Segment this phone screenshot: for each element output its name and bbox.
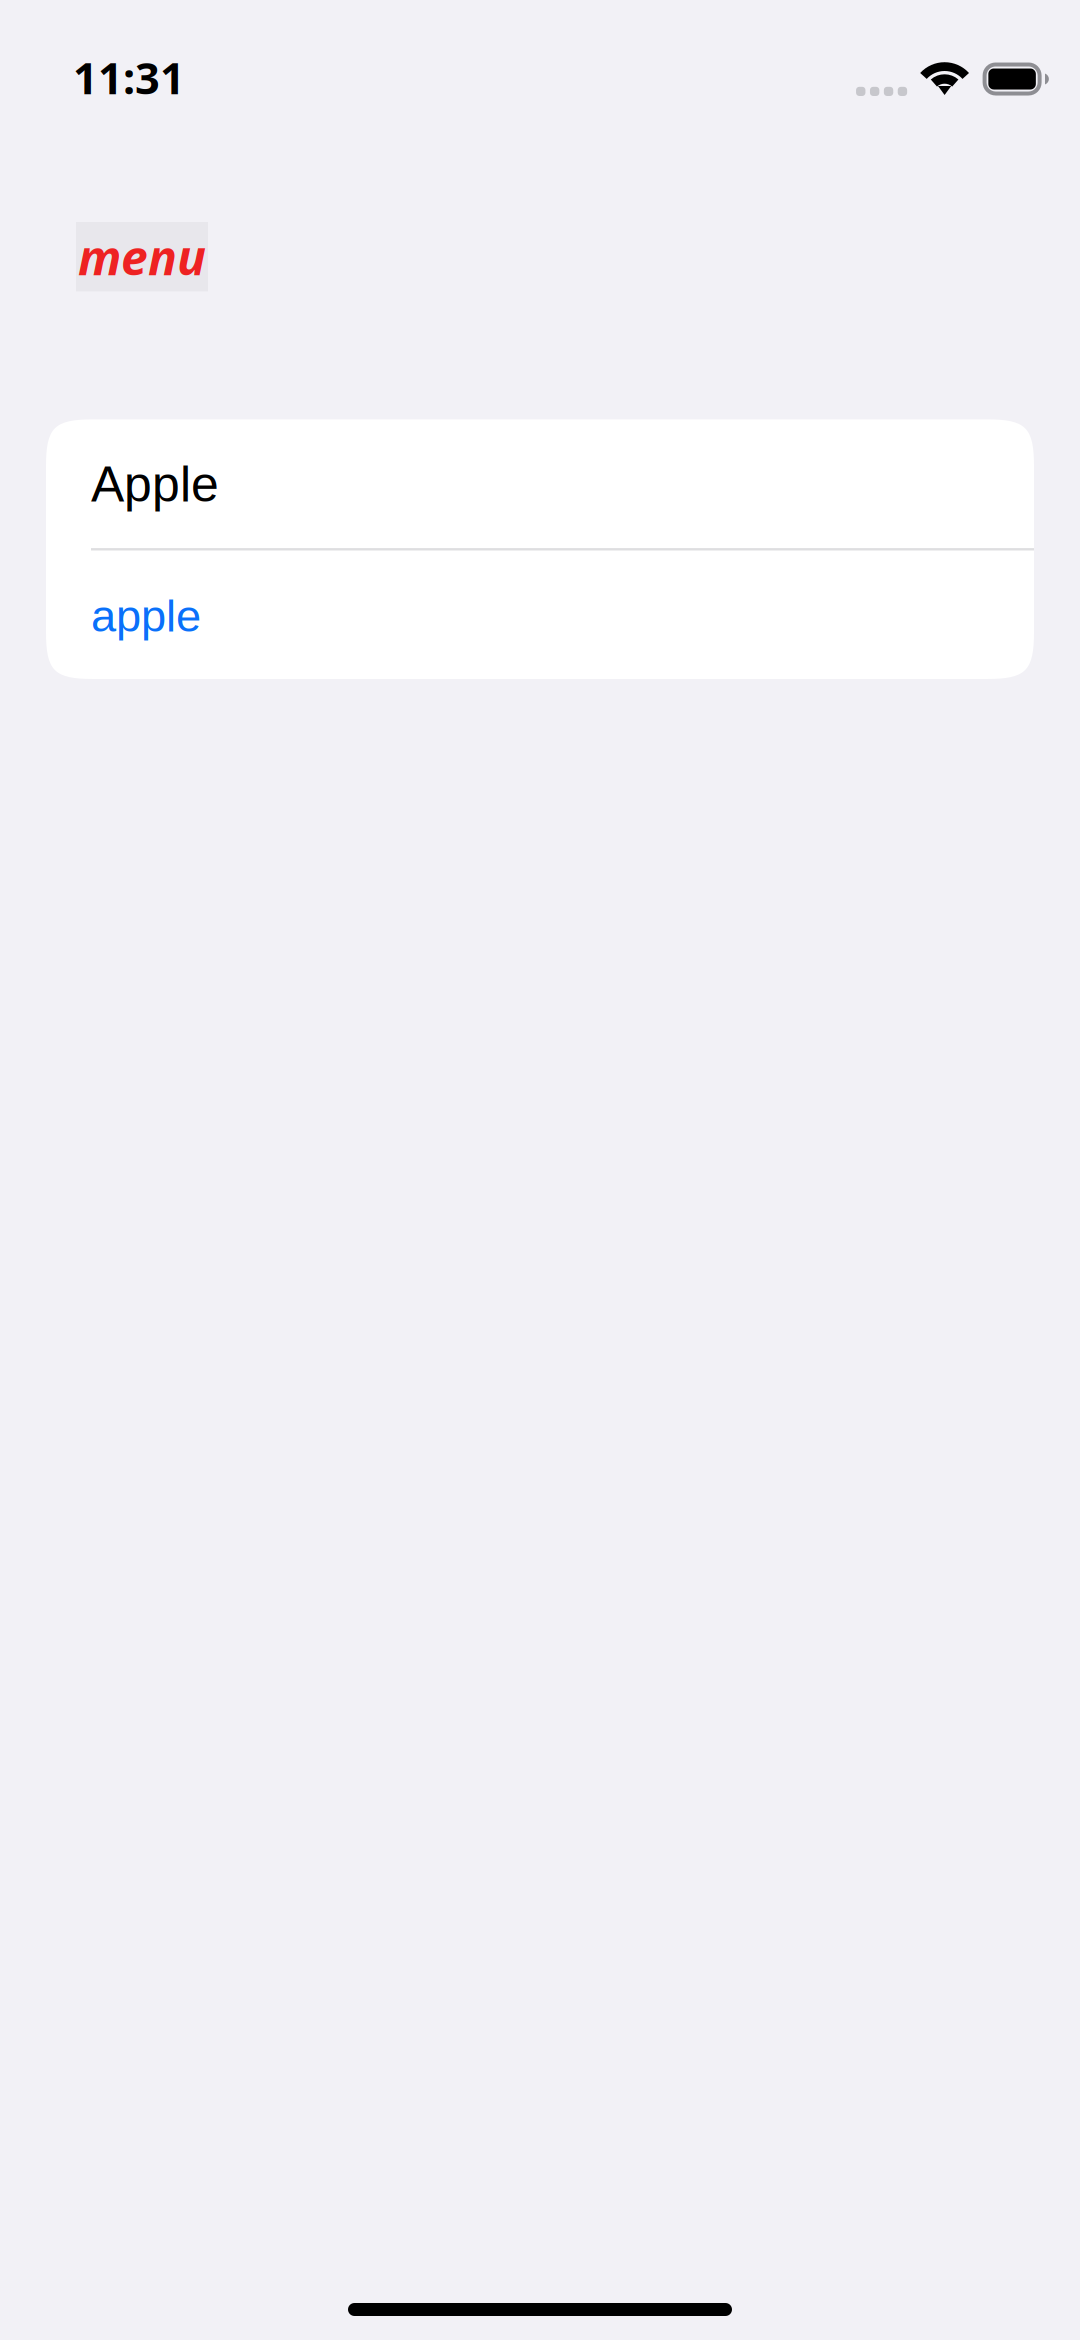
staticText: Apple [91, 456, 219, 512]
staticText: apple [91, 590, 201, 641]
button[interactable]: Apple [46, 419, 1034, 548]
staticText: 11:31 [73, 48, 185, 107]
staticText: menu [78, 224, 206, 289]
button[interactable]: apple [46, 550, 1034, 679]
